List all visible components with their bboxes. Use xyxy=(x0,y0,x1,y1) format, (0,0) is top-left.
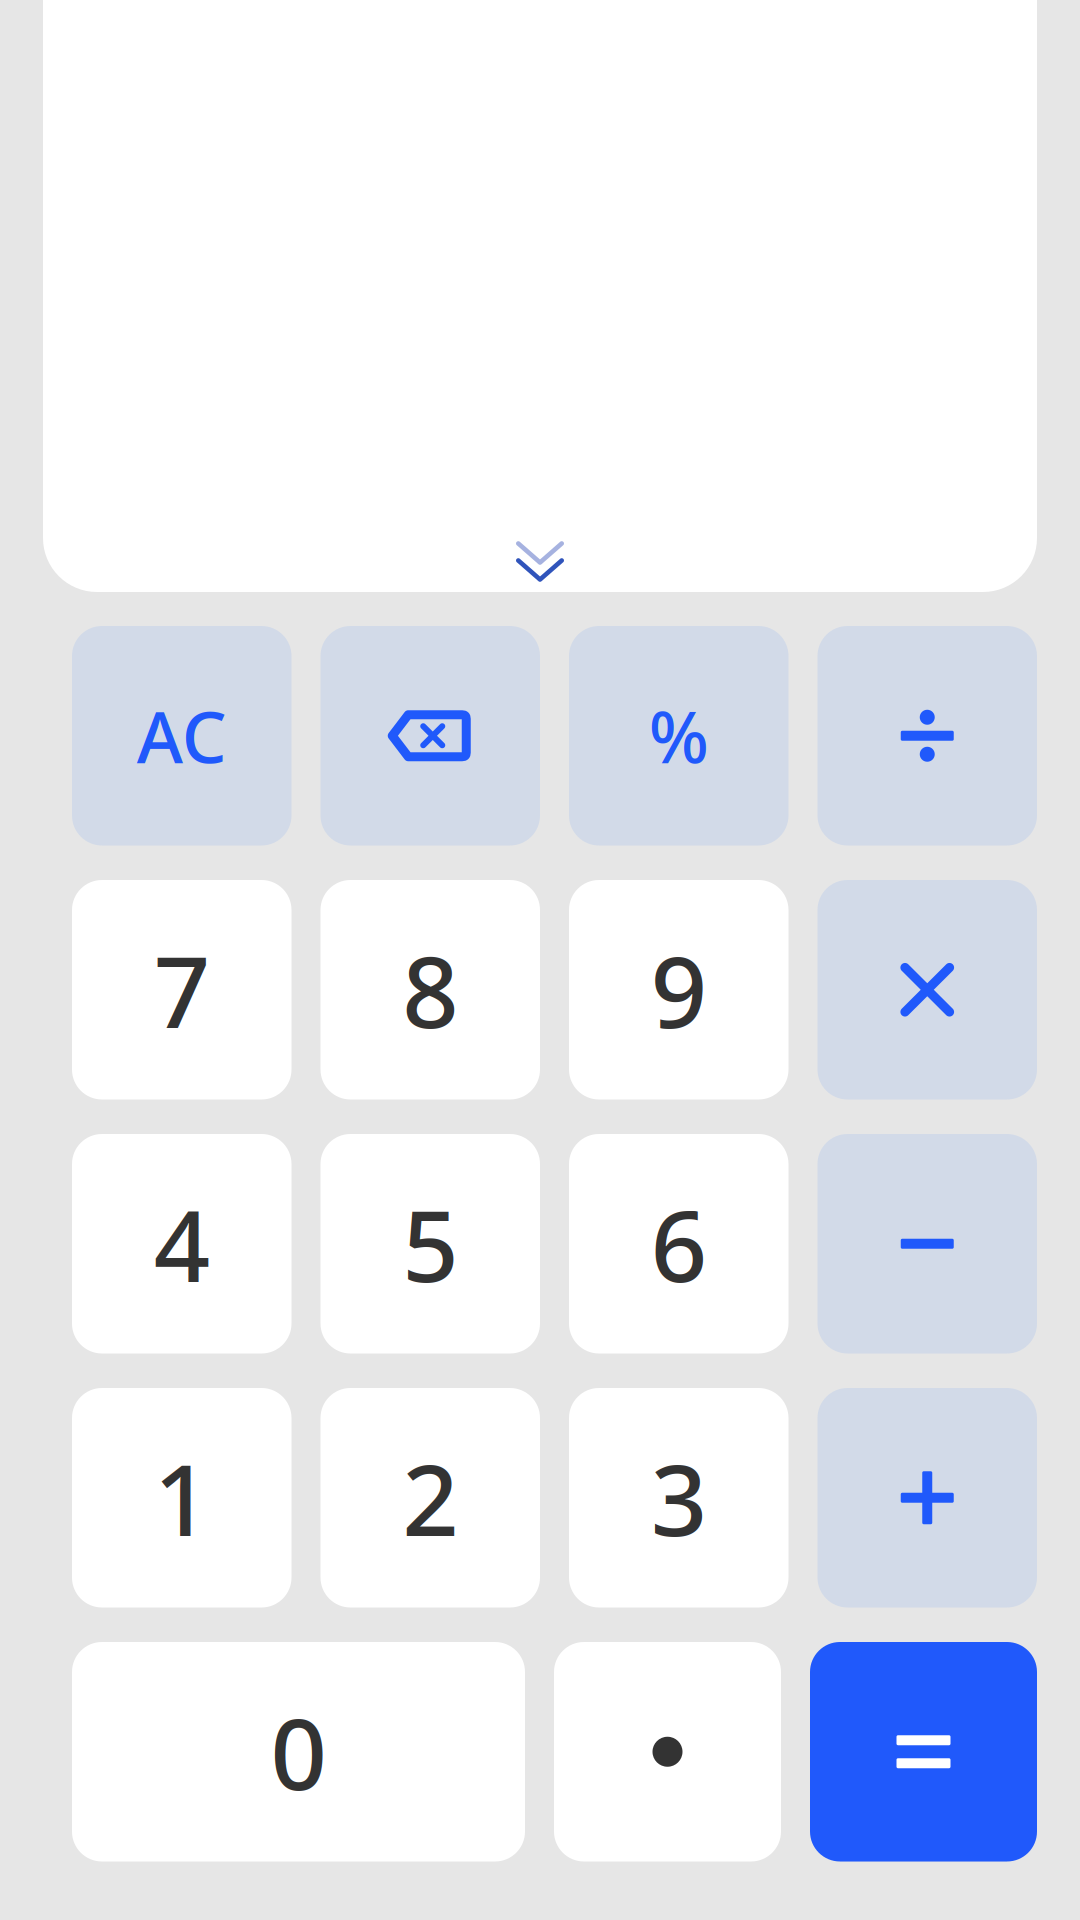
staticText: 1 xyxy=(154,1432,210,1563)
button[interactable]: AC xyxy=(72,626,291,845)
button[interactable]: Delete xyxy=(320,626,540,845)
button[interactable]: 0 xyxy=(72,1642,525,1861)
button[interactable]: 2 xyxy=(320,1388,540,1607)
staticText: 2 xyxy=(402,1432,458,1563)
staticText: 8 xyxy=(402,924,458,1055)
button[interactable]: 5 xyxy=(320,1134,540,1353)
button[interactable]: 9 xyxy=(569,880,788,1099)
staticText: 6 xyxy=(651,1178,707,1309)
button[interactable]: Divide xyxy=(817,626,1037,845)
button[interactable]: Plus xyxy=(817,1388,1037,1607)
button[interactable]: 3 xyxy=(569,1388,788,1607)
staticText: AC xyxy=(137,689,227,783)
button[interactable]: Minus xyxy=(817,1134,1037,1353)
staticText: 3 xyxy=(651,1432,707,1563)
staticText: 9 xyxy=(651,924,707,1055)
button[interactable]: % xyxy=(569,626,788,845)
button[interactable]: 6 xyxy=(569,1134,788,1353)
button[interactable]: 4 xyxy=(72,1134,291,1353)
button[interactable]: 7 xyxy=(72,880,291,1099)
button[interactable]: Decimal point xyxy=(554,1642,781,1861)
staticText: % xyxy=(649,689,709,783)
staticText: 7 xyxy=(154,924,210,1055)
button[interactable]: Multiply xyxy=(817,880,1037,1099)
staticText: 5 xyxy=(402,1178,458,1309)
staticText: 0 xyxy=(270,1686,326,1817)
button[interactable]: Equals xyxy=(810,1642,1037,1861)
staticText: 4 xyxy=(154,1178,210,1309)
button[interactable]: 1 xyxy=(72,1388,291,1607)
button[interactable]: 8 xyxy=(320,880,540,1099)
